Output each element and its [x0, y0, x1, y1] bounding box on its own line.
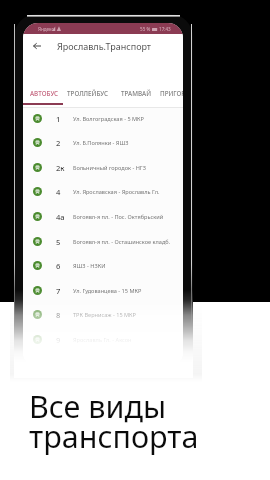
button[interactable]: 9	[23, 327, 183, 352]
staticText: Богоявл-я пл. - Осташинское кладб.	[73, 238, 171, 246]
staticText: Ул. Гудованцева - 15 МКР	[73, 287, 142, 295]
staticText: ТРК Вернисаж - 15 МКР	[73, 311, 136, 319]
button[interactable]: 7	[23, 278, 183, 303]
staticText: 55 %	[140, 26, 151, 32]
button[interactable]: АВТОБУС	[30, 78, 59, 107]
staticText: Ул. Б.Полянки - ЯШЗ	[73, 139, 129, 147]
button[interactable]: 8	[23, 302, 183, 327]
staticText: 6	[56, 261, 61, 271]
button[interactable]: 2	[23, 130, 183, 155]
button[interactable]: ТРАМВАЙ	[121, 78, 152, 107]
staticText: 4а	[56, 212, 65, 222]
staticText: 17:43	[159, 26, 171, 32]
button[interactable]: ПРИГОРОДНЫЕ	[160, 78, 183, 107]
staticText: Ул. Ярославская - Ярославль Гл.	[73, 188, 160, 196]
staticText: ПРИГОРОДНЫЕ	[160, 89, 183, 98]
staticText: 7	[56, 286, 61, 296]
button[interactable]: 4а	[23, 204, 183, 229]
staticText: 5	[56, 237, 61, 247]
button[interactable]: 5	[23, 229, 183, 254]
staticText: ТРОЛЛЕЙБУС	[67, 89, 109, 98]
staticText: ЯШЗ - НЗКИ	[73, 262, 106, 270]
button[interactable]: ТРОЛЛЕЙБУС	[67, 78, 109, 107]
staticText: Богоявл-я пл. - Пос. Октябрьский	[73, 213, 164, 221]
staticText: Ярославль.Транспорт	[57, 40, 152, 52]
staticText: 2	[56, 138, 61, 148]
staticText: ТРАМВАЙ	[121, 89, 152, 98]
staticText: 8	[56, 310, 61, 320]
staticText: 2к	[56, 163, 65, 173]
button[interactable]: 1	[23, 106, 183, 131]
staticText: 9	[56, 335, 61, 345]
button[interactable]: 4	[23, 179, 183, 204]
button[interactable]: 6	[23, 253, 183, 278]
staticText: АВТОБУС	[30, 89, 59, 98]
staticText: Ярославль Гл. - Аксон	[73, 336, 132, 344]
staticText: Яндекс	[38, 26, 54, 32]
staticText: Больничный городок - НГЗ	[73, 164, 146, 172]
staticText: Все виды транспорта	[29, 385, 199, 456]
button[interactable]: Back	[27, 36, 47, 56]
staticText: 1	[56, 114, 61, 124]
staticText: Ул. Волгоградская - 5 МКР	[73, 115, 144, 123]
staticText: 4	[56, 187, 61, 197]
button[interactable]: 2к	[23, 155, 183, 180]
